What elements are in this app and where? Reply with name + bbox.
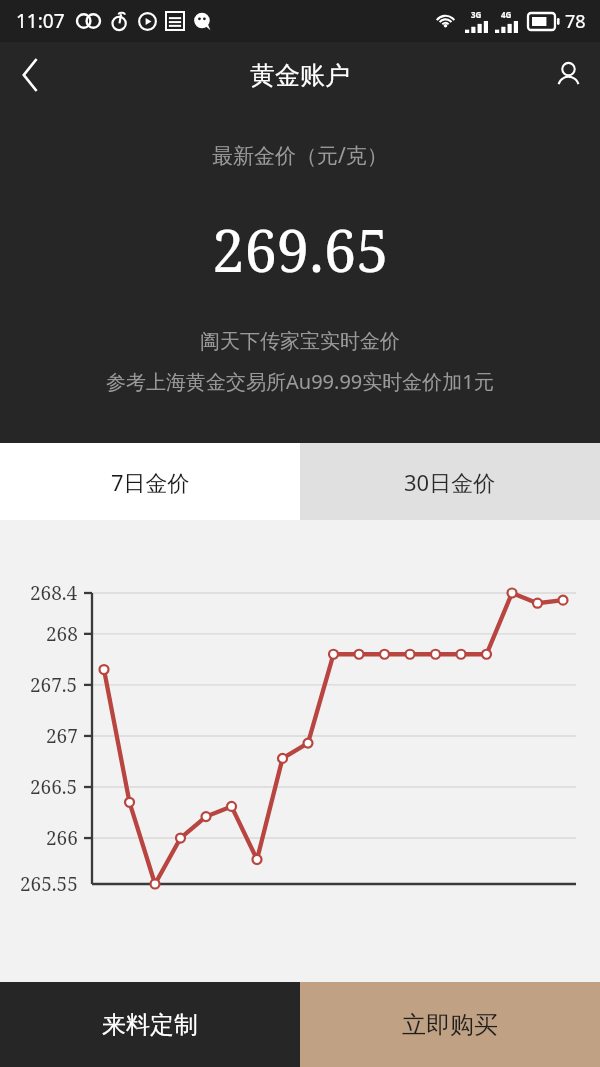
- staticText: 11:07: [16, 8, 65, 34]
- button[interactable]: 立即购买: [300, 982, 600, 1067]
- staticText: 来料定制: [102, 1010, 198, 1040]
- staticText: 7日金价: [111, 467, 190, 497]
- staticText: 269.65: [212, 210, 389, 289]
- button[interactable]: Back: [0, 44, 62, 106]
- button[interactable]: Account: [536, 43, 600, 107]
- staticText: 黄金账户: [250, 60, 350, 91]
- staticText: 参考上海黄金交易所Au99.99实时金价加1元: [106, 368, 494, 395]
- button[interactable]: 30日金价: [300, 443, 600, 520]
- staticText: 30日金价: [404, 467, 496, 497]
- staticText: 3G: [471, 9, 482, 20]
- staticText: 最新金价（元/克）: [212, 141, 388, 170]
- button[interactable]: 7日金价: [0, 443, 300, 520]
- staticText: 4G: [501, 9, 512, 20]
- button[interactable]: 来料定制: [0, 982, 300, 1067]
- staticText: 阖天下传家宝实时金价: [200, 329, 400, 354]
- staticText: 立即购买: [402, 1010, 498, 1040]
- staticText: 78: [565, 9, 586, 34]
